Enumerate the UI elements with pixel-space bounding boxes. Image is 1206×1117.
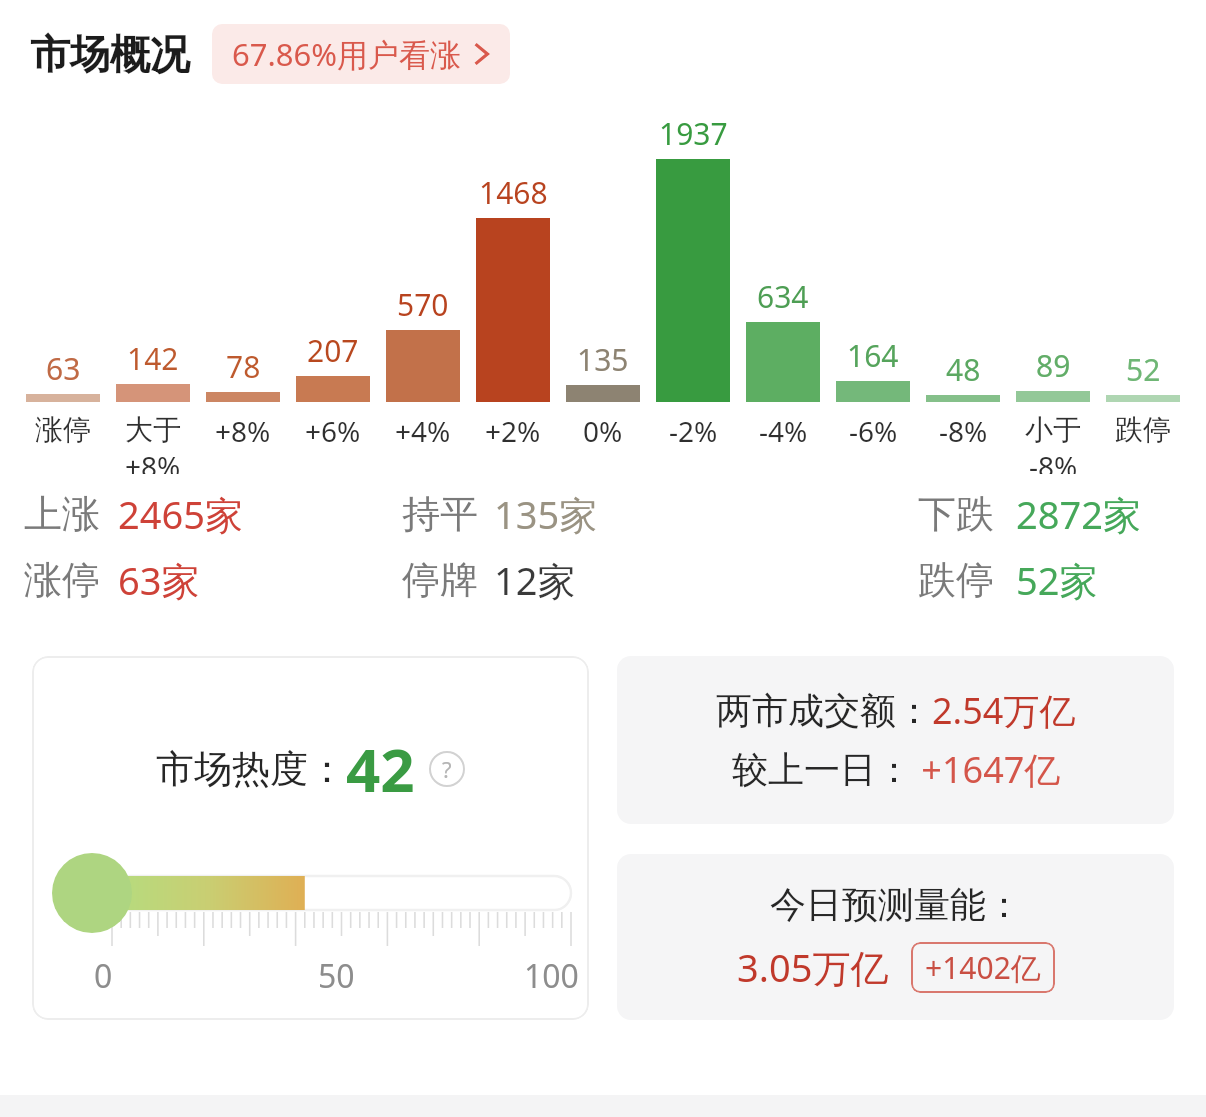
- staticText: 52: [1126, 349, 1161, 390]
- staticText: 涨停: [35, 412, 91, 447]
- staticText: 今日预测量能：: [770, 882, 1022, 927]
- staticText: 市场热度：: [156, 745, 346, 793]
- staticText: 570: [397, 284, 449, 325]
- staticText: -8%: [939, 412, 988, 450]
- staticText: 164: [847, 335, 899, 376]
- staticText: 0: [94, 954, 113, 998]
- button[interactable]: 市场热度：: [32, 656, 589, 1020]
- staticText: 停牌: [402, 556, 478, 604]
- staticText: 42: [346, 728, 415, 810]
- staticText: -2%: [669, 412, 718, 450]
- staticText: 市场概况: [30, 29, 190, 79]
- staticText: 两市成交额：: [716, 688, 932, 733]
- button[interactable]: 今日预测量能：: [617, 854, 1174, 1020]
- staticText: 较上一日：: [732, 747, 912, 792]
- staticText: 涨停: [24, 556, 100, 604]
- button[interactable]: 67.86%用户看涨: [212, 24, 510, 84]
- staticText: 跌停: [1115, 412, 1171, 447]
- staticText: 2.54万亿: [932, 686, 1076, 735]
- button[interactable]: 说明: [429, 751, 465, 787]
- staticText: +2%: [485, 412, 541, 450]
- staticText: 89: [1036, 345, 1071, 386]
- staticText: 2465家: [118, 488, 243, 540]
- staticText: 2872家: [1016, 488, 1141, 540]
- staticText: 1937: [659, 113, 728, 154]
- staticText: 上涨: [24, 490, 100, 538]
- staticText: +4%: [395, 412, 451, 450]
- staticText: 67.86%用户看涨: [232, 33, 461, 75]
- staticText: 634: [757, 276, 809, 317]
- staticText: 下跌: [918, 490, 994, 538]
- staticText: +1402亿: [925, 947, 1041, 988]
- staticText: 135家: [494, 488, 598, 540]
- staticText: 1468: [479, 172, 548, 213]
- staticText: 0%: [583, 412, 623, 450]
- staticText: +6%: [305, 412, 361, 450]
- staticText: 3.05万亿: [737, 941, 889, 993]
- staticText: 小于: [1025, 412, 1081, 447]
- staticText: +8%: [215, 412, 271, 450]
- staticText: 跌停: [918, 556, 994, 604]
- staticText: -6%: [849, 412, 898, 450]
- staticText: 100: [524, 954, 579, 998]
- button[interactable]: 两市成交额：: [617, 656, 1174, 824]
- staticText: +8%: [125, 447, 181, 474]
- staticText: 63: [46, 348, 81, 389]
- staticText: 12家: [494, 554, 576, 606]
- staticText: +1647亿: [912, 745, 1061, 794]
- staticText: 48: [946, 349, 981, 390]
- staticText: 50: [318, 954, 355, 998]
- staticText: -4%: [759, 412, 808, 450]
- staticText: ?: [442, 754, 452, 784]
- staticText: 52家: [1016, 554, 1098, 606]
- staticText: -8%: [1029, 447, 1078, 474]
- staticText: 大于: [125, 412, 181, 447]
- staticText: 142: [127, 338, 179, 379]
- staticText: 63家: [118, 554, 200, 606]
- staticText: 207: [307, 330, 359, 371]
- staticText: 持平: [402, 490, 478, 538]
- staticText: 78: [226, 346, 261, 387]
- staticText: 135: [577, 339, 629, 380]
